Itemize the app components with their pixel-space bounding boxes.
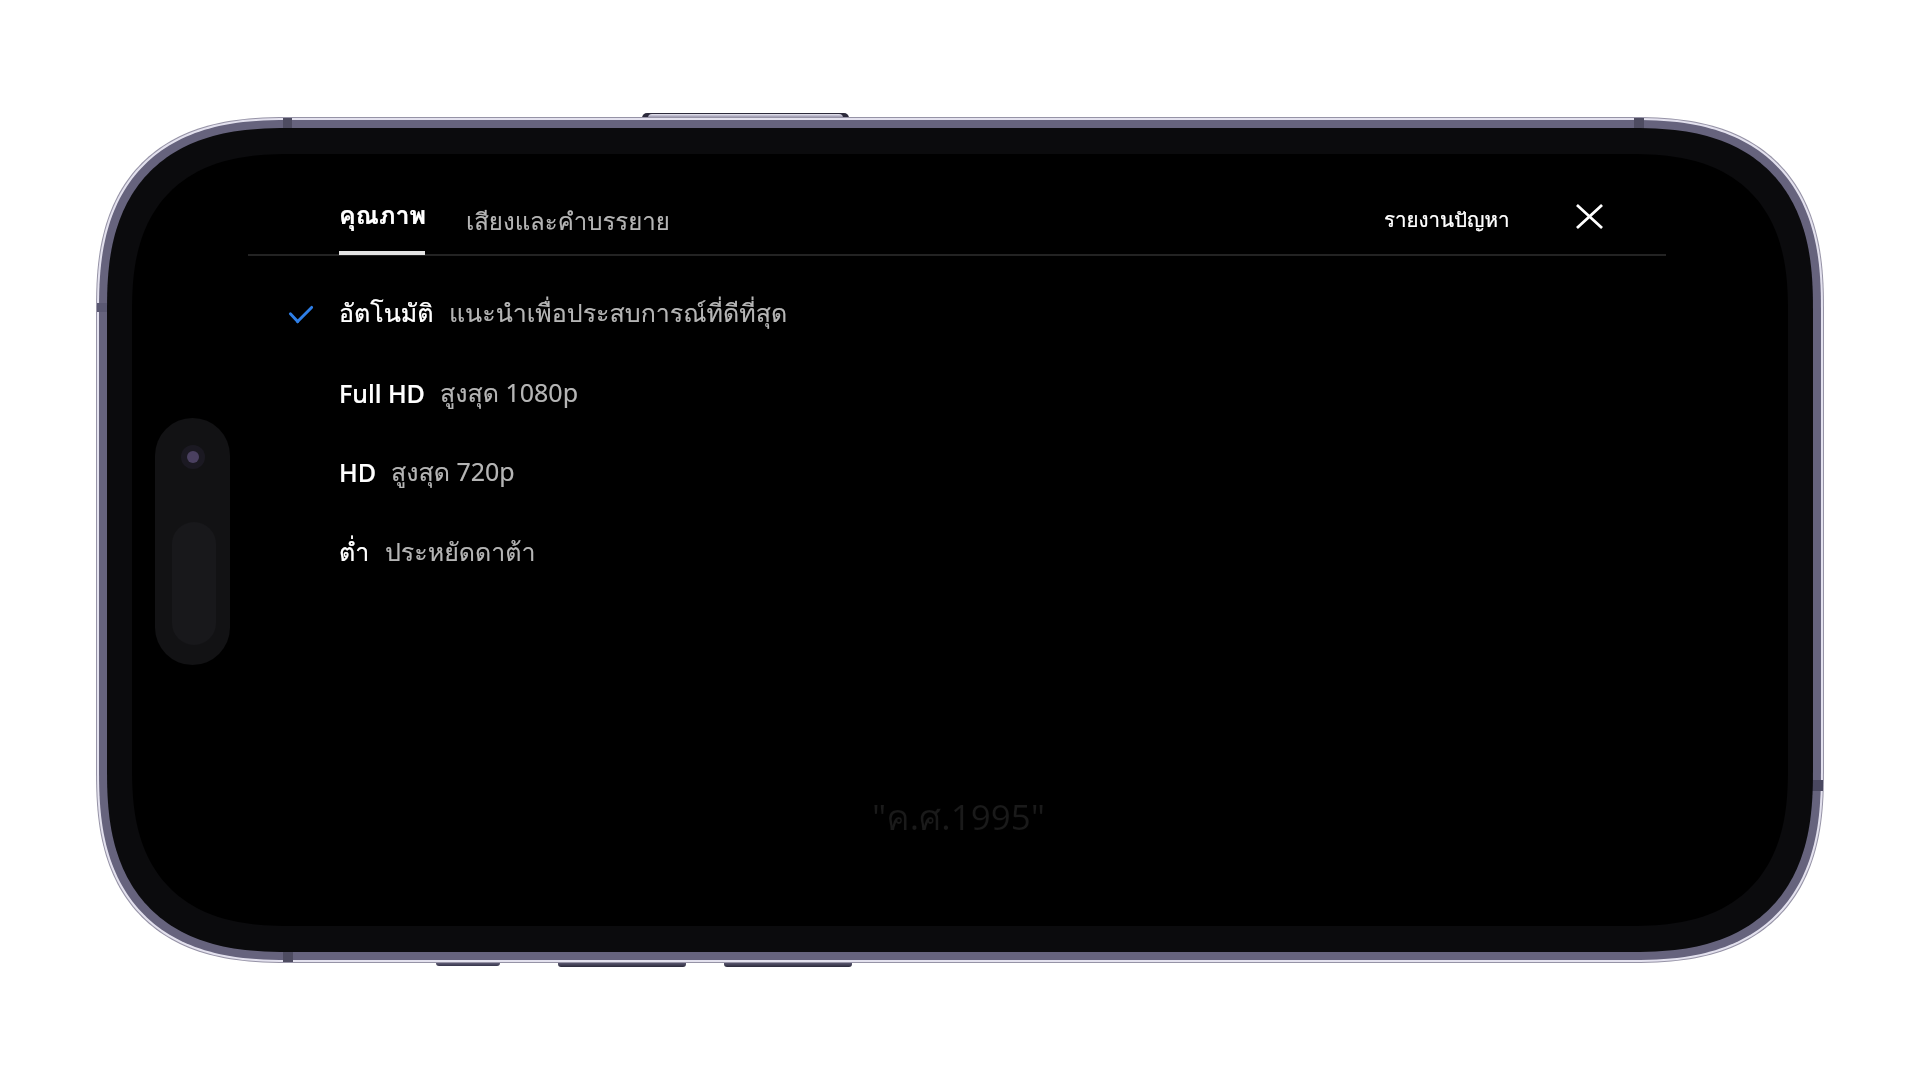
button[interactable]: อัตโนมัติ	[248, 282, 1813, 344]
staticText: ประหยัดดาต้า	[385, 532, 536, 572]
staticText: ต่ำ	[339, 532, 370, 572]
staticText: สูงสุด 1080p	[440, 373, 579, 413]
button[interactable]: Full HD	[248, 362, 1813, 424]
staticText: Full HD	[339, 376, 425, 410]
button[interactable]: Close	[1560, 187, 1618, 245]
staticText: คุณภาพ	[339, 195, 426, 235]
staticText: อัตโนมัติ	[339, 293, 434, 333]
staticText: แนะนำเพื่อประสบการณ์ที่ดีที่สุด	[449, 293, 788, 333]
button[interactable]: เสียงและคำบรรยาย	[446, 194, 690, 248]
button[interactable]: คุณภาพ	[320, 188, 444, 242]
staticText: HD	[339, 455, 376, 489]
button[interactable]: HD	[248, 441, 1813, 503]
staticText: สูงสุด 720p	[391, 452, 515, 492]
button[interactable]: รายงานปัญหา	[1370, 192, 1524, 246]
button[interactable]: ต่ำ	[248, 521, 1813, 583]
staticText: "ค.ศ.1995"	[872, 790, 1046, 846]
staticText: รายงานปัญหา	[1384, 203, 1510, 236]
staticText: เสียงและคำบรรยาย	[466, 202, 670, 240]
